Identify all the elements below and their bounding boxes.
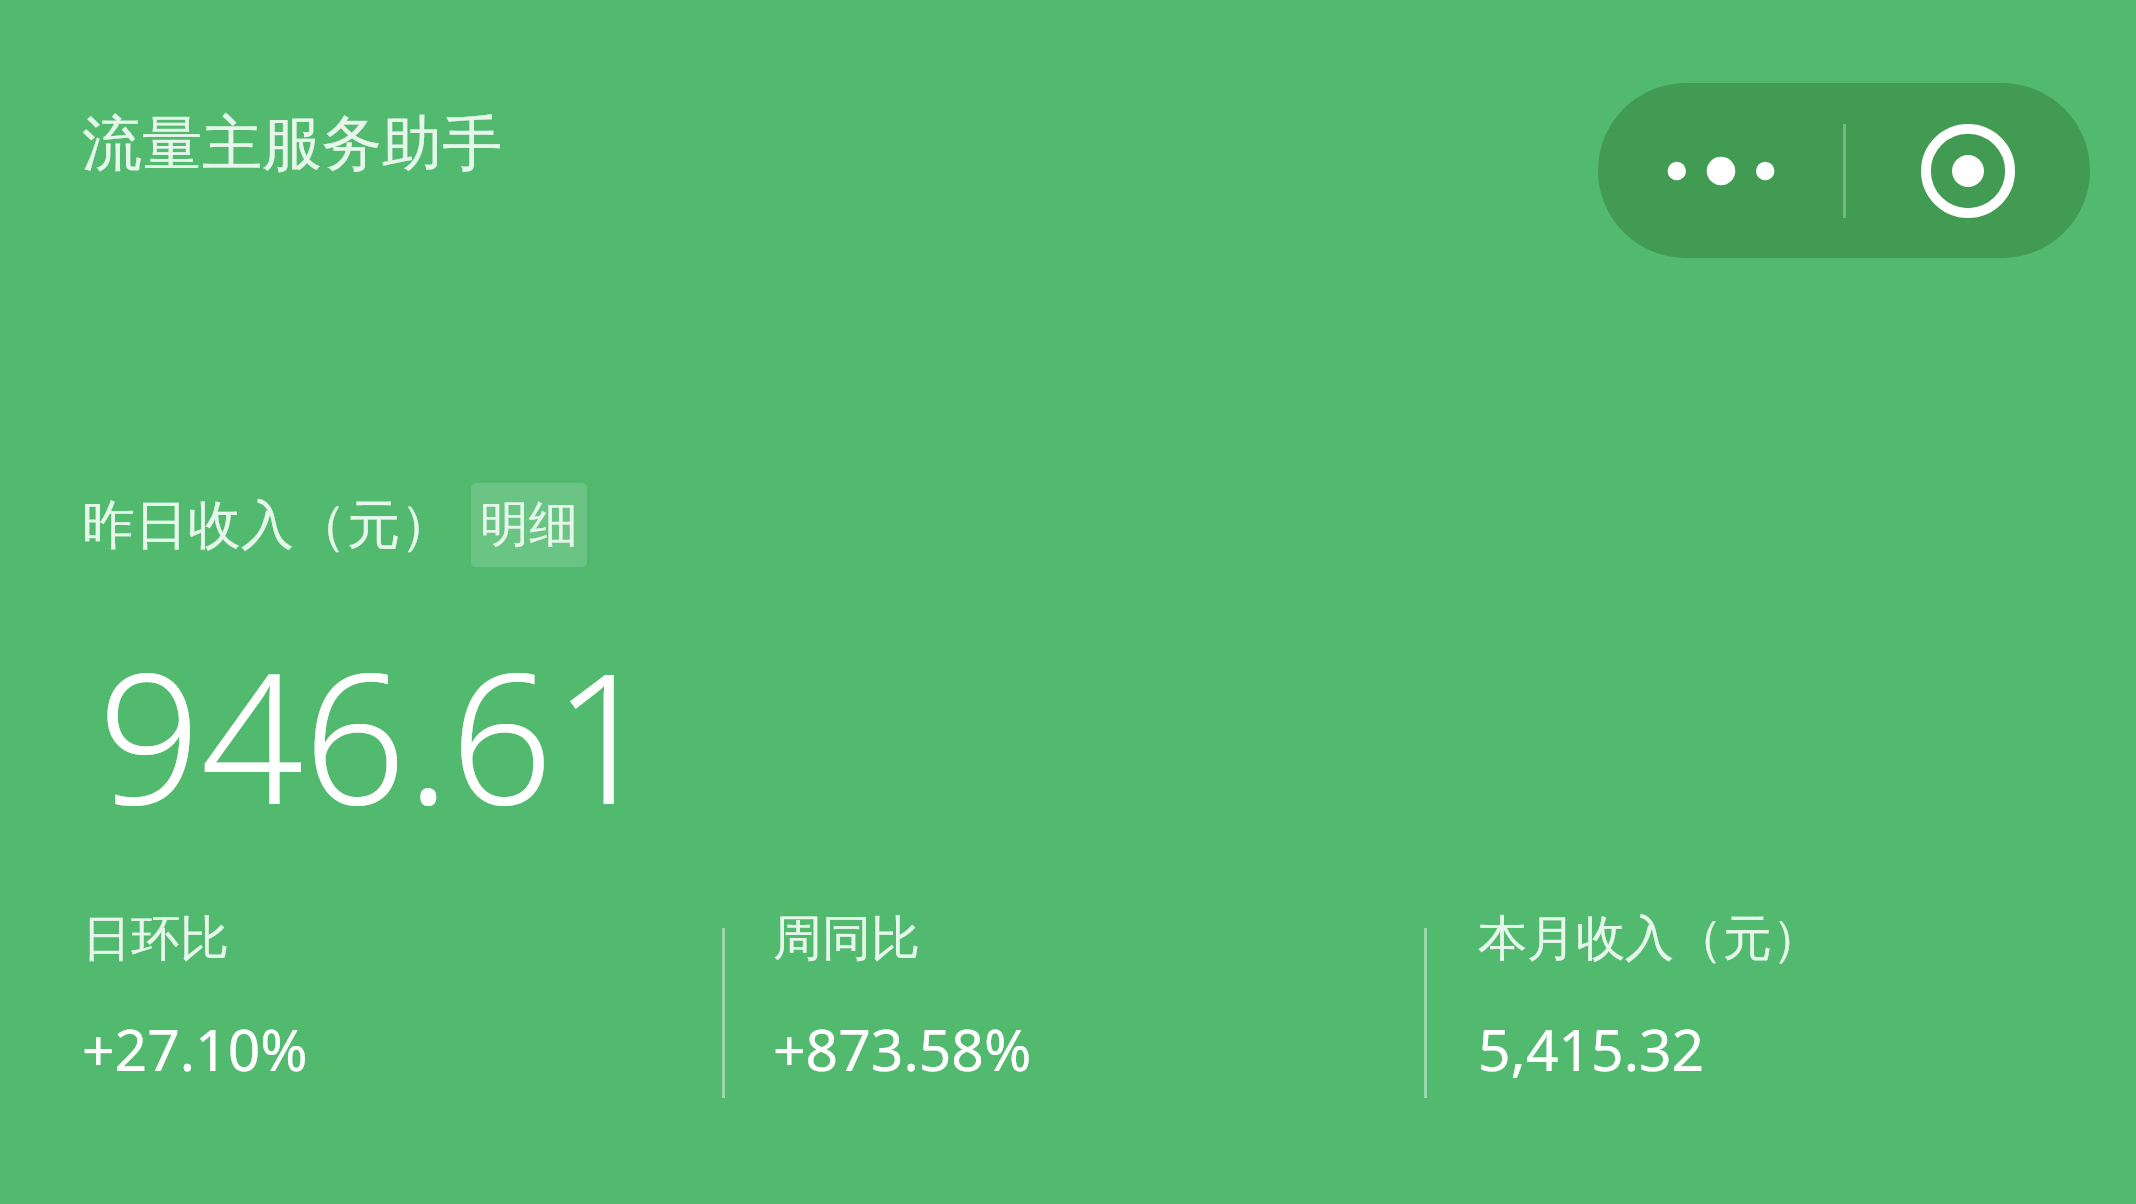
staticText: 周同比 [773, 908, 920, 970]
staticText: +873.58% [773, 1010, 1032, 1088]
button[interactable]: 本月收入（元） [1478, 908, 1821, 1088]
button[interactable]: More options [1598, 83, 1843, 258]
staticText: 本月收入（元） [1478, 908, 1821, 970]
staticText: 5,415.32 [1478, 1010, 1705, 1088]
staticText: +27.10% [82, 1010, 308, 1088]
staticText: 昨日收入（元） [82, 492, 453, 559]
staticText: 流量主服务助手 [82, 106, 502, 182]
staticText: 日环比 [82, 908, 229, 970]
button[interactable]: 日环比 [82, 908, 308, 1088]
staticText: 明细 [480, 494, 578, 556]
staticText: 946.61 [98, 612, 656, 857]
button[interactable]: 明细 [471, 483, 587, 567]
button[interactable]: Close mini program [1846, 83, 2090, 258]
button[interactable]: 周同比 [773, 908, 1032, 1088]
